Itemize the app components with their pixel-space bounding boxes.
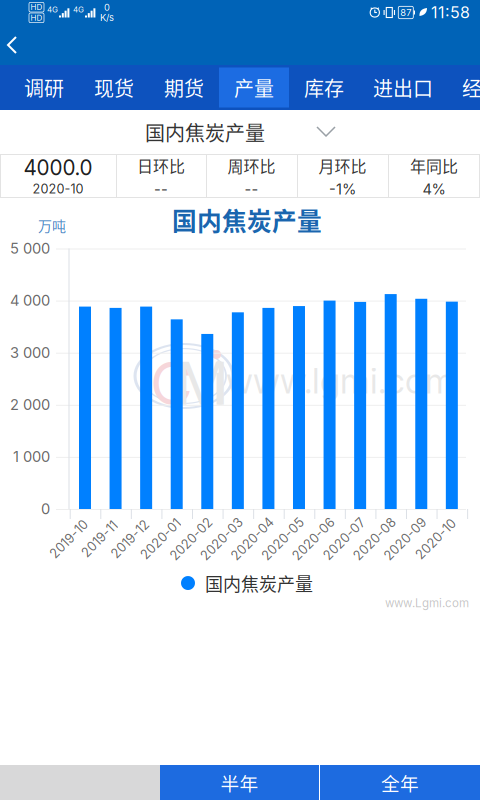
staticText: 4% <box>422 180 445 198</box>
button[interactable]: 库存 <box>289 67 359 107</box>
staticText: 2020-07 <box>318 531 371 547</box>
staticText: 0 <box>41 500 50 518</box>
staticText: K/s <box>100 12 114 23</box>
staticText: 期货 <box>164 73 204 102</box>
staticText: 库存 <box>304 73 344 102</box>
staticText: 现货 <box>94 73 134 102</box>
staticText: 经 <box>462 73 480 102</box>
staticText: 1 000 <box>13 448 50 466</box>
staticText: 国内焦炭产量 <box>145 117 265 146</box>
button[interactable]: 期货 <box>149 67 219 107</box>
staticText: 4 000 <box>10 292 50 309</box>
staticText: 调研 <box>24 73 64 102</box>
staticText: 周环比 <box>227 154 275 177</box>
staticText: 2020-03 <box>195 531 249 547</box>
staticText: 2020-02 <box>164 531 218 547</box>
staticText: C <box>150 348 193 419</box>
button[interactable]: 进出口 <box>359 67 447 107</box>
button[interactable]: 产量 <box>219 67 289 107</box>
staticText: -- <box>244 180 258 198</box>
staticText: -1% <box>329 180 356 198</box>
staticText: 月环比 <box>318 154 366 177</box>
button[interactable]: 半年 <box>160 765 319 800</box>
staticText: 3 000 <box>10 344 50 361</box>
staticText: 国内焦炭产量 <box>205 570 313 596</box>
staticText: 0 <box>104 2 110 13</box>
button[interactable]: 调研 <box>9 67 79 107</box>
staticText: -- <box>154 180 168 198</box>
staticText: 2020-06 <box>287 531 341 547</box>
staticText: 全年 <box>381 769 419 796</box>
staticText: 半年 <box>220 769 258 796</box>
staticText: 2019-12 <box>106 531 154 547</box>
staticText: HD <box>30 2 42 12</box>
button[interactable]: 经 <box>447 67 480 107</box>
staticText: 2020-04 <box>225 531 279 547</box>
staticText: 11:58 <box>431 3 470 22</box>
staticText: 5 000 <box>10 239 50 257</box>
staticText: 2020-05 <box>256 531 310 547</box>
staticText: 87 <box>400 7 411 18</box>
staticText: 万吨 <box>38 215 66 235</box>
button[interactable]: 国内焦炭产量 <box>0 110 480 154</box>
staticText: 年同比 <box>410 154 458 177</box>
staticText: 国内焦炭产量 <box>172 202 322 238</box>
staticText: 4G <box>47 5 58 14</box>
staticText: 2020-09 <box>378 531 432 547</box>
staticText: 2020-01 <box>135 531 186 547</box>
staticText: 2020-10 <box>410 531 461 547</box>
staticText: 4G <box>73 5 84 14</box>
button[interactable]: 现货 <box>79 67 149 107</box>
staticText: 2020-08 <box>348 531 402 547</box>
staticText: 2020-10 <box>32 181 83 197</box>
staticText: www.Lgmi.com <box>385 596 469 610</box>
staticText: 日环比 <box>137 154 185 177</box>
staticText: 2019-10 <box>45 531 93 547</box>
staticText: HD <box>30 13 42 23</box>
staticText: www.lgmi.com <box>226 360 455 402</box>
button[interactable]: Back <box>0 32 46 58</box>
staticText: M <box>176 348 229 419</box>
button[interactable]: 全年 <box>320 765 480 800</box>
staticText: 4000.0 <box>23 155 92 180</box>
staticText: 产量 <box>234 73 274 102</box>
staticText: 2019-11 <box>77 531 122 547</box>
staticText: 2 000 <box>10 396 50 413</box>
staticText: i <box>212 348 226 419</box>
staticText: 进出口 <box>373 73 433 102</box>
